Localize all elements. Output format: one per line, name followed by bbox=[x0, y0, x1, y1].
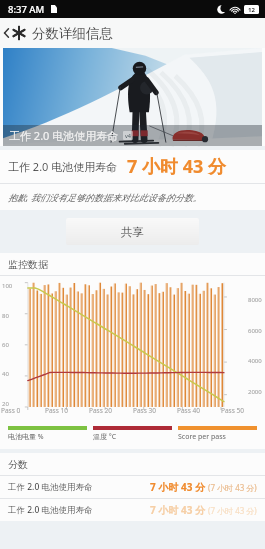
staticText: Pass 0 bbox=[1, 406, 21, 415]
staticText: 温度 °C bbox=[93, 432, 117, 442]
staticText: 80 bbox=[2, 312, 9, 320]
staticText: 分数详细信息 bbox=[32, 25, 113, 42]
staticText: 8:37 AM bbox=[8, 3, 45, 16]
staticText: 7 小时 43 分 bbox=[127, 154, 226, 179]
staticText: v4 bbox=[125, 132, 131, 139]
staticText: 4000 bbox=[248, 357, 262, 365]
staticText: 监控数据 bbox=[8, 258, 48, 271]
staticText: Pass 50 bbox=[221, 406, 244, 415]
staticText: 工作 2.0 电池使用寿命 bbox=[9, 128, 119, 143]
staticText: 8000 bbox=[248, 296, 262, 304]
staticText: 7 小时 43 分 bbox=[150, 480, 205, 494]
staticText: 100 bbox=[2, 282, 13, 290]
staticText: 7 小时 43 分 bbox=[150, 503, 205, 517]
staticText: 工作 2.0 电池使用寿命 bbox=[8, 504, 93, 516]
staticText: 40 bbox=[2, 370, 9, 378]
staticText: (7 小时 43 分) bbox=[208, 505, 257, 516]
staticText: Pass 20 bbox=[89, 406, 112, 415]
staticText: 电池电量 % bbox=[8, 432, 44, 442]
button[interactable]: 工作 2.0 电池使用寿命 bbox=[0, 476, 265, 498]
staticText: 抱歉, 我们没有足够的数据来对比此设备的分数。 bbox=[8, 191, 202, 203]
button[interactable]: 共享 bbox=[66, 218, 199, 245]
button[interactable]: 工作 2.0 电池使用寿命 bbox=[0, 499, 265, 521]
staticText: Score per pass bbox=[178, 432, 226, 442]
staticText: 工作 2.0 电池使用寿命 bbox=[8, 481, 93, 493]
staticText: 12 bbox=[248, 6, 255, 14]
button[interactable]: Back bbox=[0, 21, 28, 45]
staticText: 2000 bbox=[248, 388, 262, 396]
staticText: 6000 bbox=[248, 327, 262, 335]
staticText: 分数 bbox=[8, 458, 28, 471]
staticText: (7 小时 43 分) bbox=[208, 482, 257, 493]
staticText: 共享 bbox=[121, 225, 144, 239]
staticText: Pass 40 bbox=[177, 406, 200, 415]
staticText: Pass 10 bbox=[45, 406, 68, 415]
staticText: 20 bbox=[2, 400, 9, 408]
staticText: 工作 2.0 电池使用寿命 bbox=[8, 159, 118, 174]
staticText: Pass 30 bbox=[133, 406, 156, 415]
staticText: 60 bbox=[2, 341, 9, 349]
